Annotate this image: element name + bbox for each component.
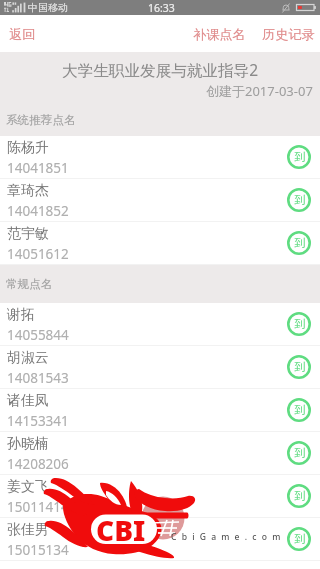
- staticText: 谢拓: [7, 306, 35, 324]
- button[interactable]: 姜文飞: [0, 475, 320, 518]
- staticText: 16:33: [148, 1, 175, 15]
- staticText: 14051612: [7, 245, 69, 263]
- staticText: CBI: [96, 511, 146, 549]
- staticText: 系统推荐点名: [6, 113, 76, 128]
- button[interactable]: 谢拓: [0, 303, 320, 346]
- staticText: 到: [294, 403, 305, 417]
- staticText: 姜文飞: [7, 478, 49, 496]
- staticText: 14153341: [7, 412, 69, 430]
- staticText: 到: [294, 193, 305, 207]
- button[interactable]: 到: [287, 484, 311, 508]
- button[interactable]: 到: [287, 312, 311, 336]
- button[interactable]: 到: [287, 188, 311, 212]
- staticText: 到: [294, 236, 305, 250]
- staticText: CbiGame.com: [171, 531, 286, 543]
- staticText: 14055844: [7, 326, 69, 344]
- staticText: 到: [294, 489, 305, 503]
- button[interactable]: 到: [287, 355, 311, 379]
- staticText: 到: [294, 360, 305, 374]
- button[interactable]: 孙晓楠: [0, 432, 320, 475]
- button[interactable]: 诸佳凤: [0, 389, 320, 432]
- button[interactable]: 胡淑云: [0, 346, 320, 389]
- staticText: 到: [294, 446, 305, 460]
- staticText: 常规点名: [6, 277, 53, 292]
- button[interactable]: 补课点名: [180, 18, 254, 51]
- button[interactable]: 到: [287, 231, 311, 255]
- button[interactable]: 张佳男: [0, 518, 320, 561]
- button[interactable]: 到: [287, 441, 311, 465]
- staticText: 14081543: [7, 369, 69, 387]
- staticText: 到: [294, 532, 305, 546]
- button[interactable]: 范宇敏: [0, 222, 320, 265]
- staticText: 范宇敏: [7, 225, 49, 243]
- button[interactable]: 历史记录: [254, 18, 320, 51]
- button[interactable]: 到: [287, 527, 311, 551]
- button[interactable]: 陈杨升: [0, 136, 320, 179]
- staticText: 张佳男: [7, 521, 49, 539]
- button[interactable]: 到: [287, 398, 311, 422]
- staticText: 返回: [9, 26, 36, 43]
- staticText: 大学生职业发展与就业指导2: [62, 59, 259, 80]
- staticText: 胡淑云: [7, 349, 49, 367]
- staticText: 诸佳凤: [7, 392, 49, 410]
- button[interactable]: 章琦杰: [0, 179, 320, 222]
- staticText: 14041851: [7, 159, 69, 177]
- staticText: 到: [294, 150, 305, 164]
- staticText: 章琦杰: [7, 182, 49, 200]
- staticText: 补课点名: [193, 26, 246, 43]
- staticText: 历史记录: [262, 26, 315, 43]
- staticText: 14041852: [7, 202, 69, 220]
- button[interactable]: 到: [287, 145, 311, 169]
- staticText: 中国移动: [28, 1, 68, 14]
- staticText: 陈杨升: [7, 139, 49, 157]
- staticText: 孙晓楠: [7, 435, 49, 453]
- staticText: 创建于2017-03-07: [206, 82, 313, 100]
- staticText: 15015134: [7, 541, 69, 559]
- staticText: 15011414: [7, 498, 69, 516]
- button[interactable]: 返回: [0, 17, 50, 50]
- staticText: 到: [294, 317, 305, 331]
- staticText: 14208206: [7, 455, 69, 473]
